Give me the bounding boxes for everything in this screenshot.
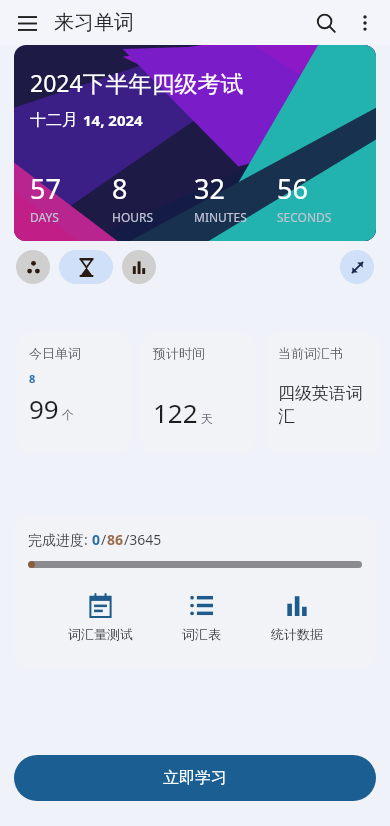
staticText: SECONDS <box>277 209 332 225</box>
staticText: 86 <box>107 530 124 549</box>
staticText: 99 <box>29 391 59 426</box>
staticText: 2024下半年四级考试 <box>30 67 244 98</box>
button[interactable]: Countdown <box>59 250 113 284</box>
staticText: 完成进度: <box>28 530 92 549</box>
button[interactable]: 立即学习 <box>14 755 376 801</box>
button[interactable]: 今日单词 <box>17 333 130 453</box>
staticText: HOURS <box>112 209 154 225</box>
staticText: 天 <box>201 411 213 426</box>
staticText: 当前词汇书 <box>278 345 343 361</box>
button[interactable]: Words <box>16 250 50 284</box>
button[interactable]: More options <box>346 4 384 42</box>
staticText: 预计时间 <box>153 345 205 361</box>
button[interactable]: Expand <box>340 250 374 284</box>
staticText: 14, 2024 <box>83 110 143 130</box>
staticText: DAYS <box>30 209 59 225</box>
staticText: 词汇量测试 <box>68 626 133 642</box>
staticText: 来习单词 <box>54 10 134 35</box>
button[interactable]: 词汇量测试 <box>58 590 143 644</box>
button[interactable]: 2024下半年四级考试 <box>14 45 376 241</box>
staticText: 立即学习 <box>163 768 227 788</box>
staticText: 57 <box>30 170 61 207</box>
staticText: 32 <box>194 170 225 207</box>
button[interactable]: 预计时间 <box>141 333 255 453</box>
staticText: 今日单词 <box>29 345 81 361</box>
staticText: 统计数据 <box>271 626 323 642</box>
staticText: 8 <box>29 371 36 386</box>
staticText: 词汇表 <box>182 626 221 642</box>
staticText: 8 <box>112 170 128 207</box>
button[interactable]: Statistics <box>122 250 156 284</box>
staticText: 122 <box>153 395 198 430</box>
staticText: 十二月 <box>30 108 83 130</box>
staticText: 56 <box>277 170 308 207</box>
button[interactable]: 当前词汇书 <box>266 333 380 453</box>
button[interactable]: Menu <box>10 6 44 40</box>
staticText: 四级英语词汇 <box>278 383 374 427</box>
button[interactable]: 词汇表 <box>172 590 231 644</box>
staticText: / <box>101 530 107 549</box>
staticText: MINUTES <box>194 209 247 225</box>
button[interactable]: Search <box>306 3 346 43</box>
staticText: 个 <box>62 407 74 422</box>
staticText: /3645 <box>124 530 162 549</box>
staticText: 0 <box>92 530 101 549</box>
button[interactable]: 统计数据 <box>261 590 333 644</box>
